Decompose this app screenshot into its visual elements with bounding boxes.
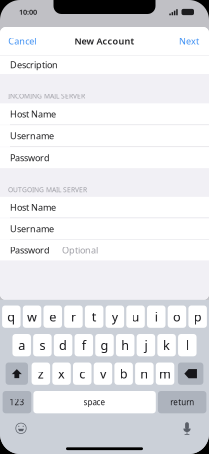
button[interactable]: z <box>32 362 50 385</box>
staticText: t <box>92 308 97 325</box>
staticText: space <box>84 397 106 408</box>
button[interactable]: j <box>137 334 155 356</box>
staticText: 10:00 <box>19 7 37 17</box>
staticText: i <box>155 308 158 325</box>
staticText: v <box>100 365 106 382</box>
button[interactable]: b <box>114 362 133 385</box>
staticText: g <box>100 336 108 354</box>
staticText: l <box>186 336 189 354</box>
button[interactable]: w <box>23 305 41 328</box>
staticText: q <box>7 308 15 325</box>
button[interactable]: q <box>2 305 21 328</box>
button[interactable]: Emoji keyboard <box>0 422 27 434</box>
button[interactable]: k <box>157 334 176 356</box>
button[interactable]: return <box>158 391 206 413</box>
button[interactable]: Next <box>173 28 209 54</box>
staticText: d <box>59 336 67 354</box>
button[interactable]: t <box>85 305 103 328</box>
staticText: New Account <box>74 35 134 47</box>
button[interactable]: i <box>147 305 165 328</box>
button[interactable]: e <box>43 305 62 328</box>
button[interactable]: Host Name <box>0 103 209 124</box>
staticText: o <box>173 308 181 325</box>
button[interactable]: Username <box>0 218 209 239</box>
button[interactable]: n <box>135 362 154 385</box>
button[interactable]: Password <box>0 147 209 168</box>
button[interactable]: Shift <box>6 362 28 385</box>
staticText: Username <box>10 222 54 235</box>
staticText: OUTGOING MAIL SERVER <box>8 185 87 194</box>
button[interactable]: Password <box>0 240 209 260</box>
staticText: Host Name <box>10 108 56 120</box>
staticText: INCOMING MAIL SERVER <box>8 91 85 100</box>
staticText: w <box>27 308 37 325</box>
staticText: j <box>144 336 147 354</box>
button[interactable]: Cancel <box>0 28 42 54</box>
staticText: u <box>132 308 140 325</box>
staticText: z <box>38 365 44 382</box>
staticText: a <box>18 336 25 354</box>
staticText: Password <box>10 244 50 256</box>
staticText: Description <box>10 59 58 71</box>
button[interactable]: r <box>64 305 83 328</box>
staticText: return <box>170 397 194 408</box>
button[interactable]: y <box>106 305 124 328</box>
button[interactable]: u <box>126 305 145 328</box>
button[interactable]: f <box>74 334 93 356</box>
staticText: y <box>112 308 118 325</box>
button[interactable]: h <box>116 334 134 356</box>
button[interactable]: Host Name <box>0 197 209 218</box>
staticText: c <box>79 365 85 382</box>
staticText: Optional <box>62 244 98 256</box>
staticText: k <box>163 336 170 354</box>
button[interactable]: d <box>54 334 72 356</box>
button[interactable]: space <box>33 391 156 413</box>
button[interactable]: Username <box>0 125 209 146</box>
staticText: r <box>71 308 76 325</box>
staticText: Next <box>179 35 199 47</box>
staticText: s <box>39 336 45 354</box>
staticText: b <box>120 365 128 382</box>
button[interactable]: Description <box>0 56 209 74</box>
button[interactable]: p <box>188 305 207 328</box>
button[interactable]: s <box>33 334 52 356</box>
button[interactable]: c <box>73 362 91 385</box>
button[interactable]: 123 <box>3 391 31 413</box>
staticText: m <box>159 365 171 382</box>
staticText: f <box>82 336 86 354</box>
staticText: Cancel <box>8 35 36 47</box>
button[interactable]: v <box>94 362 112 385</box>
button[interactable]: x <box>52 362 71 385</box>
staticText: x <box>58 365 65 382</box>
button[interactable]: a <box>12 334 31 356</box>
staticText: p <box>194 308 202 325</box>
button[interactable]: Dictate <box>181 421 209 435</box>
staticText: e <box>49 308 56 325</box>
staticText: Password <box>10 151 50 164</box>
staticText: Host Name <box>10 201 56 213</box>
button[interactable]: l <box>178 334 197 356</box>
staticText: Username <box>10 130 54 142</box>
button[interactable]: Delete <box>178 362 203 385</box>
button[interactable]: o <box>168 305 186 328</box>
button[interactable]: m <box>156 362 174 385</box>
staticText: h <box>121 336 129 354</box>
staticText: 123 <box>9 397 24 408</box>
staticText: n <box>140 365 148 382</box>
button[interactable]: g <box>95 334 114 356</box>
